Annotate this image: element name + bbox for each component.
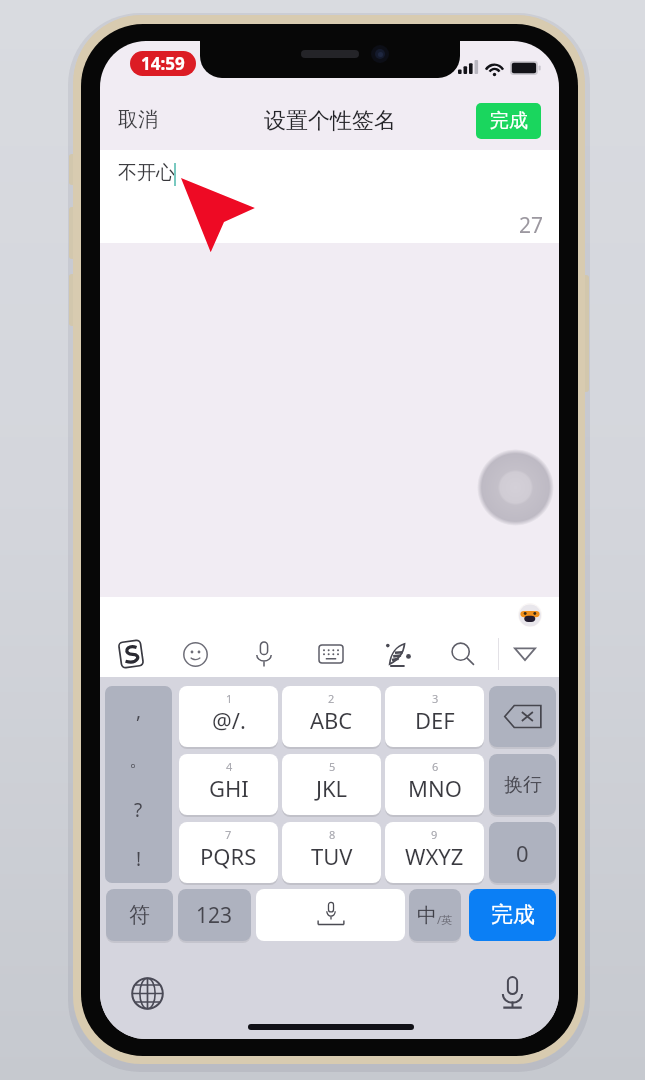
button[interactable]: 完成	[469, 889, 556, 941]
staticText: 4	[226, 759, 233, 774]
button[interactable]: 。	[105, 735, 172, 784]
button[interactable]: Keyboard layout	[304, 627, 358, 681]
staticText: ,	[136, 698, 142, 724]
button[interactable]: !	[105, 834, 172, 883]
staticText: 7	[225, 827, 232, 842]
button[interactable]: Emoji	[168, 627, 222, 681]
button[interactable]: 换行	[489, 754, 556, 815]
button[interactable]: 9	[385, 822, 484, 883]
staticText: 设置个性签名	[264, 107, 396, 135]
button[interactable]: 1	[179, 686, 278, 747]
button[interactable]: 4	[179, 754, 278, 815]
staticText: 9	[431, 827, 438, 842]
button[interactable]: 123	[178, 889, 251, 941]
button[interactable]: 7	[179, 822, 278, 883]
button[interactable]: Sogou input method	[104, 627, 158, 681]
staticText: ?	[134, 797, 143, 823]
staticText: 0	[516, 838, 529, 868]
button[interactable]: 8	[282, 822, 381, 883]
button[interactable]: Space	[256, 889, 405, 941]
button[interactable]: 取消	[100, 96, 176, 143]
button[interactable]: ?	[105, 785, 172, 834]
staticText: @/.	[212, 705, 246, 735]
button[interactable]: Hide keyboard	[498, 627, 552, 681]
button[interactable]: Search	[436, 627, 490, 681]
staticText: /英	[437, 912, 453, 927]
staticText: MNO	[408, 773, 462, 803]
staticText: 8	[329, 827, 336, 842]
button[interactable]: 中	[409, 889, 461, 941]
button[interactable]: ,	[105, 686, 172, 735]
button[interactable]: 5	[282, 754, 381, 815]
staticText: 中	[417, 903, 437, 928]
button[interactable]: 完成	[476, 103, 541, 139]
button[interactable]: Dictation	[492, 972, 533, 1013]
staticText: 27	[519, 211, 544, 240]
staticText: 不开心	[118, 161, 175, 185]
button[interactable]: 2	[282, 686, 381, 747]
staticText: DEF	[415, 705, 455, 735]
staticText: 换行	[504, 773, 542, 797]
staticText: 完成	[490, 109, 528, 133]
staticText: WXYZ	[405, 841, 464, 871]
button[interactable]: 符	[106, 889, 173, 941]
staticText: 123	[196, 901, 233, 930]
staticText: 1	[226, 691, 233, 706]
staticText: 完成	[491, 901, 535, 929]
staticText: ABC	[310, 705, 353, 735]
button[interactable]: Change keyboard	[127, 973, 168, 1014]
staticText: !	[136, 846, 142, 872]
staticText: 取消	[118, 107, 158, 132]
staticText: 5	[329, 759, 336, 774]
button[interactable]: 6	[385, 754, 484, 815]
staticText: 3	[432, 691, 439, 706]
staticText: 2	[328, 691, 335, 706]
staticText: 符	[129, 902, 150, 928]
staticText: PQRS	[200, 841, 257, 871]
button[interactable]: Handwriting	[371, 627, 425, 681]
button[interactable]: 3	[385, 686, 484, 747]
button[interactable]: 0	[489, 822, 556, 883]
staticText: 6	[432, 759, 439, 774]
staticText: TUV	[311, 841, 353, 871]
staticText: GHI	[209, 773, 249, 803]
button[interactable]: Voice input	[237, 627, 291, 681]
button[interactable]: Backspace	[489, 686, 556, 747]
staticText: 。	[129, 748, 148, 772]
staticText: JKL	[316, 773, 348, 803]
staticText: 14:59	[141, 52, 185, 75]
